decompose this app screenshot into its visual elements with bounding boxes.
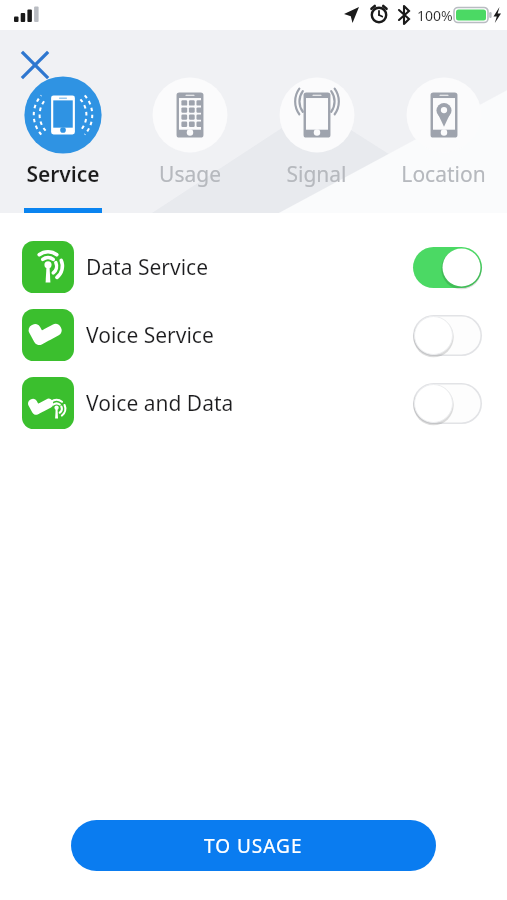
button[interactable]: Close (14, 44, 56, 86)
button[interactable]: TO USAGE (71, 820, 436, 871)
button[interactable]: Voice and Data (0, 377, 507, 429)
button[interactable]: Location (380, 71, 507, 213)
button[interactable]: Signal (253, 71, 380, 213)
staticText: TO USAGE (204, 833, 303, 859)
staticText: Data Service (86, 253, 208, 282)
staticText: Voice and Data (86, 389, 234, 418)
button[interactable]: Data Service (0, 241, 507, 293)
staticText: Usage (159, 160, 221, 189)
staticText: Service (26, 160, 100, 189)
button[interactable]: Toggle off (413, 383, 482, 424)
staticText: Voice Service (86, 321, 214, 350)
staticText: Signal (286, 160, 347, 189)
button[interactable]: Toggle on (413, 247, 482, 288)
staticText: Location (401, 160, 486, 189)
staticText: 100% (417, 6, 453, 25)
button[interactable]: Service (0, 71, 126, 213)
button[interactable]: Voice Service (0, 309, 507, 361)
button[interactable]: Toggle off (413, 315, 482, 356)
button[interactable]: Usage (126, 71, 253, 213)
